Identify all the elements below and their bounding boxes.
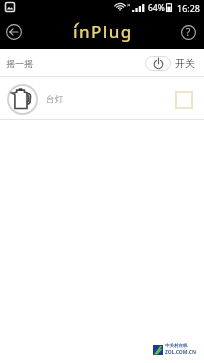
- staticText: 16:28: [177, 2, 201, 14]
- button[interactable]: Help: [177, 21, 199, 43]
- staticText: 开关: [175, 57, 195, 70]
- staticText: ?: [186, 25, 191, 39]
- staticText: 摇一摇: [6, 58, 33, 69]
- staticText: inPlug: [73, 20, 133, 43]
- staticText: 台灯: [46, 94, 63, 105]
- staticText: ZOL.COM.CN: [165, 349, 196, 356]
- button[interactable]: Back: [3, 21, 25, 43]
- button[interactable]: Select device: [175, 91, 193, 109]
- button[interactable]: 台灯: [0, 77, 204, 120]
- button[interactable]: 开关: [145, 56, 195, 71]
- staticText: ×: [127, 1, 131, 9]
- staticText: 中关村在线: [165, 343, 188, 349]
- staticText: 64%: [148, 2, 165, 14]
